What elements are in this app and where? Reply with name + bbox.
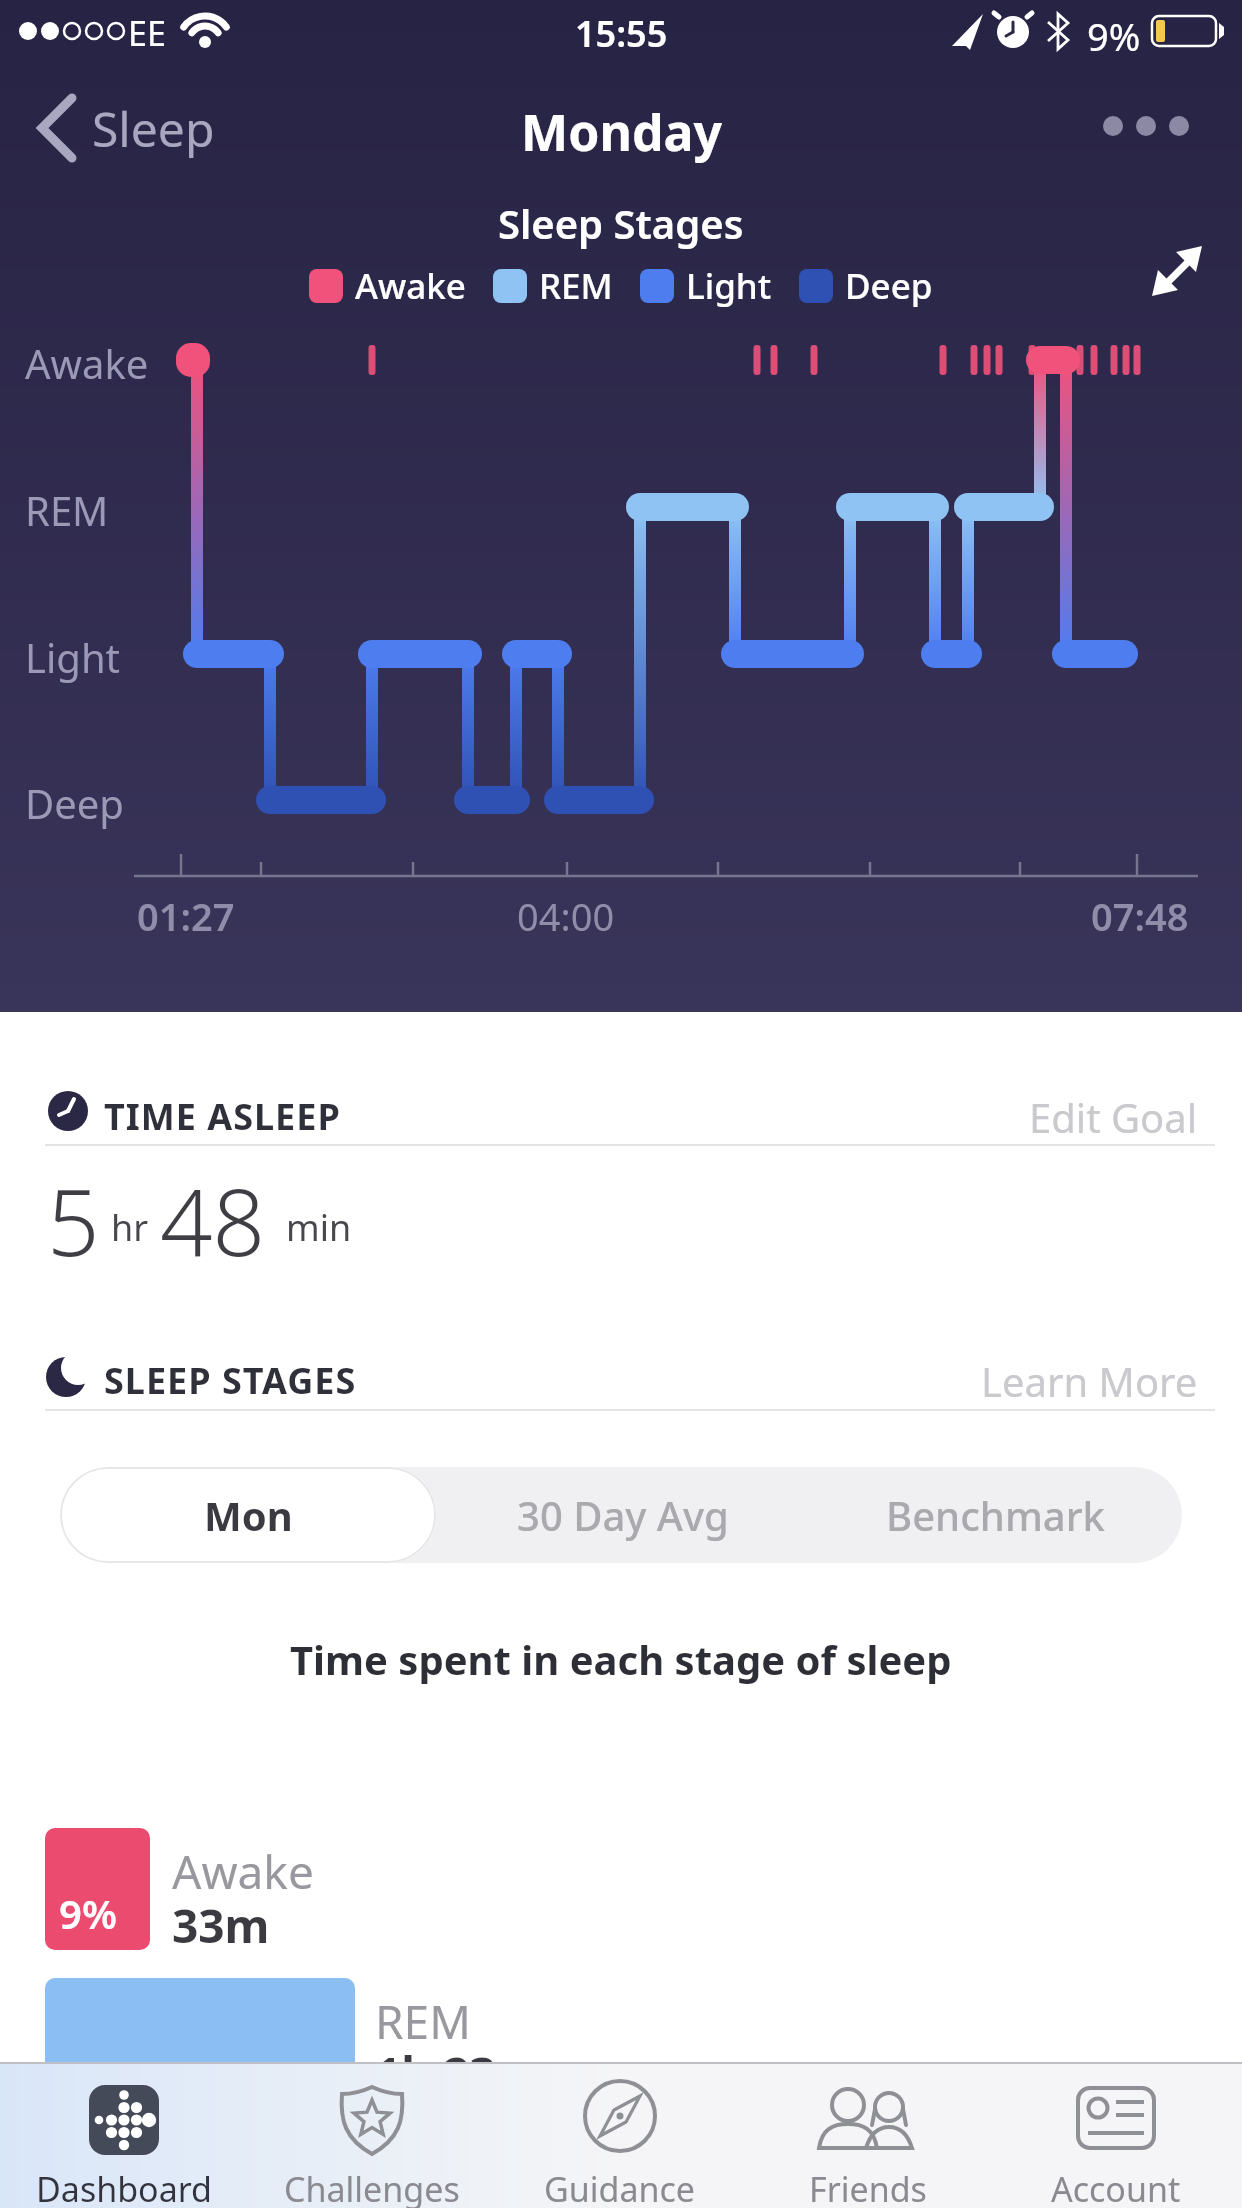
staticText: SLEEP STAGES	[104, 1356, 357, 1405]
staticText: Friends	[809, 2166, 927, 2208]
button[interactable]: Dashboard	[0, 2062, 248, 2208]
staticText: Benchmark	[886, 1488, 1105, 1542]
button[interactable]: Challenges	[248, 2062, 496, 2208]
button[interactable]: Edit Goal	[920, 1090, 1198, 1142]
staticText: Mon	[204, 1488, 293, 1542]
button[interactable]: Learn More	[900, 1354, 1198, 1406]
button[interactable]	[1142, 230, 1222, 310]
button[interactable]	[1090, 96, 1210, 156]
staticText: Monday	[521, 98, 722, 166]
staticText: 9%	[1087, 10, 1141, 62]
staticText: Light	[25, 630, 121, 684]
staticText: Awake	[25, 336, 149, 390]
staticText: 24%	[59, 2056, 140, 2110]
button[interactable]: Sleep	[20, 86, 250, 170]
button[interactable]: 30 Day Avg	[436, 1467, 809, 1563]
button[interactable]: Account	[992, 2062, 1240, 2208]
staticText: Edit Goal	[1029, 1090, 1198, 1142]
staticText: Dashboard	[36, 2166, 213, 2208]
staticText: Learn More	[981, 1354, 1198, 1406]
staticText: 5	[47, 1158, 100, 1283]
staticText: hr	[111, 1203, 149, 1252]
staticText: Time spent in each stage of sleep	[290, 1632, 952, 1686]
staticText: 15:55	[575, 9, 668, 58]
staticText: REM	[539, 262, 613, 310]
staticText: 33m	[172, 1894, 270, 1957]
button[interactable]: Friends	[744, 2062, 992, 2208]
staticText: TIME ASLEEP	[104, 1092, 341, 1141]
staticText: REM	[375, 1990, 471, 2053]
staticText: Deep	[845, 262, 933, 310]
button[interactable]: Benchmark	[809, 1467, 1182, 1563]
staticText: 9%	[59, 1886, 117, 1940]
staticText: Awake	[172, 1840, 314, 1903]
button[interactable]: 9%	[45, 1828, 150, 1950]
staticText: EE	[128, 10, 166, 56]
staticText: Challenges	[284, 2166, 460, 2208]
staticText: Sleep	[92, 96, 215, 161]
staticText: REM	[25, 483, 109, 537]
staticText: 07:48	[1091, 890, 1189, 942]
staticText: 04:00	[517, 890, 615, 942]
staticText: Guidance	[544, 2166, 696, 2208]
button[interactable]: Guidance	[496, 2062, 744, 2208]
staticText: Light	[686, 262, 772, 310]
staticText: Account	[1051, 2166, 1181, 2208]
button[interactable]: Mon	[60, 1467, 436, 1563]
staticText: 1h 23m	[375, 2042, 541, 2105]
staticText: Awake	[355, 262, 466, 310]
staticText: min	[286, 1203, 352, 1252]
staticText: Sleep Stages	[498, 196, 744, 250]
staticText: 30 Day Avg	[517, 1488, 729, 1542]
button[interactable]: 24%	[45, 1978, 355, 2120]
staticText: Deep	[25, 776, 124, 830]
staticText: 01:27	[137, 890, 235, 942]
staticText: 48	[160, 1158, 266, 1283]
